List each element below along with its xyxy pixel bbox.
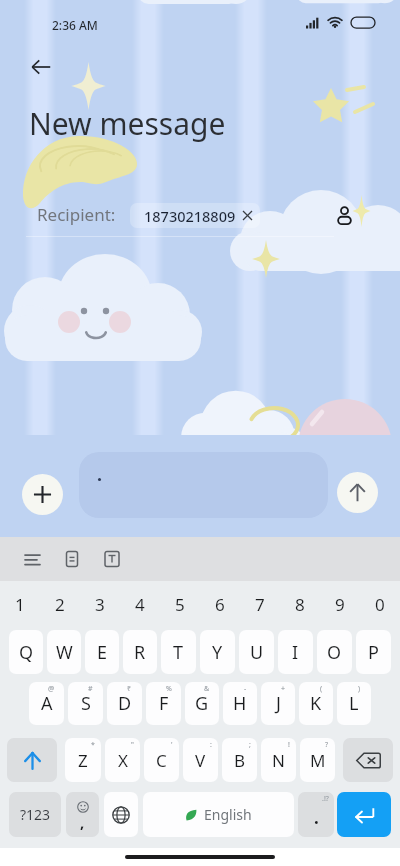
button[interactable]: A xyxy=(29,682,64,725)
staticText: ? xyxy=(325,740,329,750)
staticText: .!? xyxy=(322,794,329,804)
staticText: H xyxy=(233,691,247,716)
button[interactable]: Enter xyxy=(337,792,391,837)
staticText: ?123 xyxy=(20,805,51,824)
button[interactable]: D xyxy=(107,682,142,725)
button[interactable]: Clipboard xyxy=(56,543,88,575)
button[interactable]: 18730218809 xyxy=(130,203,260,228)
staticText: ' xyxy=(171,740,173,750)
staticText: P xyxy=(368,640,379,665)
button[interactable]: N xyxy=(261,738,296,782)
staticText: 2:36 AM xyxy=(52,17,98,33)
button[interactable]: G xyxy=(185,682,219,725)
button[interactable]: H xyxy=(223,682,257,725)
staticText: " xyxy=(131,740,134,750)
staticText: 4 xyxy=(135,593,145,616)
staticText: - xyxy=(244,684,247,694)
staticText: D xyxy=(118,691,132,716)
button[interactable]: 2 xyxy=(40,581,80,627)
staticText: 8 xyxy=(295,593,305,616)
staticText: 3 xyxy=(95,593,105,616)
button[interactable]: 0 xyxy=(360,581,400,627)
staticText: O xyxy=(327,640,342,665)
staticText: L xyxy=(349,691,359,716)
button[interactable]: Shift xyxy=(7,738,57,782)
button[interactable]: 9 xyxy=(320,581,360,627)
button[interactable]: W xyxy=(47,630,81,674)
staticText: 1 xyxy=(15,593,25,616)
button[interactable]: C xyxy=(144,738,179,782)
staticText: C xyxy=(156,749,167,772)
button[interactable]: F xyxy=(146,682,181,725)
button[interactable]: Backspace xyxy=(343,738,393,782)
button[interactable]: V xyxy=(183,738,218,782)
button[interactable]: Add attachment xyxy=(22,474,63,515)
staticText: M xyxy=(310,749,326,772)
button[interactable]: R xyxy=(123,630,157,674)
button[interactable]: X xyxy=(105,738,140,782)
button[interactable]: B xyxy=(222,738,257,782)
button[interactable]: Y xyxy=(200,630,235,674)
staticText: ! xyxy=(288,740,290,750)
staticText: 2 xyxy=(55,593,65,616)
staticText: I xyxy=(292,640,299,665)
staticText: # xyxy=(88,684,93,694)
button[interactable]: . xyxy=(298,792,334,837)
staticText: S xyxy=(81,691,91,716)
button[interactable]: U xyxy=(239,630,274,674)
staticText: K xyxy=(310,691,322,716)
button[interactable]: Change language xyxy=(104,792,138,837)
staticText: 0 xyxy=(375,593,385,616)
staticText: ) xyxy=(358,684,361,694)
button[interactable]: Q xyxy=(9,630,43,674)
staticText: E xyxy=(97,640,108,665)
button[interactable]: E xyxy=(85,630,119,674)
staticText: X xyxy=(118,749,128,772)
staticText: + xyxy=(281,684,286,694)
button[interactable]: M xyxy=(300,738,335,782)
button[interactable]: 4 xyxy=(120,581,160,627)
staticText: * xyxy=(91,740,95,750)
button[interactable]: P xyxy=(356,630,391,674)
staticText: Y xyxy=(212,640,223,665)
staticText: B xyxy=(234,749,246,772)
staticText: 5 xyxy=(175,593,185,616)
button[interactable]: J xyxy=(261,682,295,725)
staticText: ₹ xyxy=(127,684,132,694)
button[interactable]: 6 xyxy=(200,581,240,627)
button[interactable]: O xyxy=(317,630,352,674)
button[interactable]: 3 xyxy=(80,581,120,627)
staticText: V xyxy=(195,749,206,772)
button[interactable]: 1 xyxy=(0,581,40,627)
staticText: N xyxy=(272,749,285,772)
staticText: : xyxy=(210,740,212,750)
button[interactable]: Contacts xyxy=(324,195,364,235)
staticText: Z xyxy=(78,749,88,772)
staticText: ( xyxy=(320,684,323,694)
staticText: G xyxy=(195,691,209,716)
button[interactable] xyxy=(79,452,328,518)
button[interactable]: Send xyxy=(337,472,378,513)
staticText: @ xyxy=(48,684,55,694)
staticText: Recipient: xyxy=(37,203,116,226)
staticText: A xyxy=(41,691,53,716)
button[interactable]: Menu xyxy=(16,543,48,575)
button[interactable]: Back xyxy=(20,46,62,88)
button[interactable]: English xyxy=(143,792,294,837)
button[interactable]: ?123 xyxy=(9,792,61,837)
button[interactable]: Text style xyxy=(96,543,128,575)
button[interactable]: K xyxy=(299,682,333,725)
button[interactable]: I xyxy=(278,630,313,674)
staticText: & xyxy=(204,684,210,694)
button[interactable]: S xyxy=(68,682,103,725)
staticText: English xyxy=(204,805,252,824)
button[interactable]: Z xyxy=(65,738,101,782)
staticText: R xyxy=(134,640,146,665)
button[interactable]: 5 xyxy=(160,581,200,627)
staticText: ; xyxy=(249,740,251,750)
button[interactable]: Emoji and comma xyxy=(66,792,99,837)
button[interactable]: 7 xyxy=(240,581,280,627)
button[interactable]: 8 xyxy=(280,581,320,627)
button[interactable]: T xyxy=(161,630,196,674)
button[interactable]: L xyxy=(337,682,371,725)
